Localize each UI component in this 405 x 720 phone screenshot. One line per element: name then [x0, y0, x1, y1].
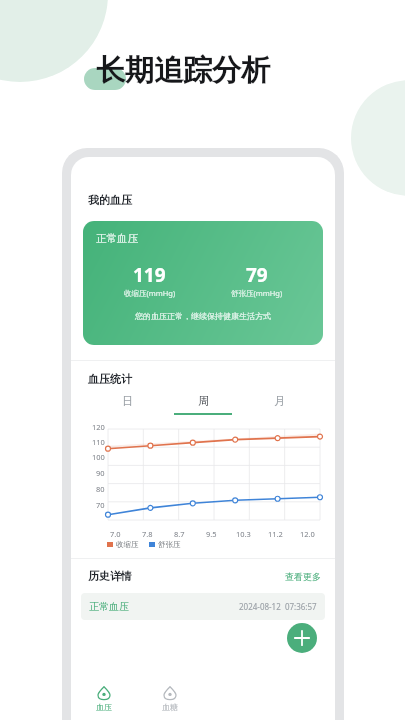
button[interactable]: 月: [241, 394, 317, 415]
staticText: 舒张压: [158, 540, 181, 549]
staticText: 我的血压: [88, 193, 132, 207]
staticText: 11.2: [268, 529, 283, 539]
button[interactable]: 血糖: [137, 678, 203, 720]
staticText: 120: [92, 422, 105, 432]
staticText: 9.5: [206, 529, 217, 539]
staticText: 2024-08-12 07:36:57: [239, 601, 317, 612]
staticText: 您的血压正常，继续保持健康生活方式: [96, 311, 310, 321]
staticText: 79: [246, 262, 268, 288]
staticText: 119: [133, 262, 166, 288]
button[interactable]: 查看更多: [285, 571, 321, 582]
staticText: 血压统计: [88, 372, 132, 386]
staticText: 70: [96, 500, 105, 510]
button[interactable]: 血压: [71, 678, 137, 720]
button[interactable]: 周: [165, 394, 241, 415]
staticText: 110: [92, 437, 105, 447]
staticText: 80: [96, 484, 105, 494]
staticText: 舒张压(mmHg): [231, 288, 283, 298]
staticText: 90: [96, 468, 105, 478]
staticText: 日: [122, 394, 133, 408]
staticText: 周: [198, 394, 209, 408]
staticText: 12.0: [300, 529, 315, 539]
staticText: 月: [274, 394, 285, 408]
staticText: 血压: [96, 702, 112, 712]
staticText: 正常血压: [96, 232, 138, 245]
staticText: 正常血压: [89, 600, 129, 613]
button[interactable]: 正常血压: [81, 593, 325, 620]
staticText: 历史详情: [88, 569, 132, 583]
staticText: 收缩压(mmHg): [124, 288, 176, 298]
staticText: 收缩压: [116, 540, 139, 549]
button[interactable]: 添加记录: [287, 623, 317, 653]
staticText: 7.0: [110, 529, 121, 539]
other: 血压: [97, 686, 111, 700]
button[interactable]: 正常血压: [83, 221, 323, 345]
staticText: 长期追踪分析: [96, 52, 270, 89]
staticText: 血糖: [162, 702, 178, 712]
button[interactable]: 日: [89, 394, 165, 415]
staticText: 10.3: [236, 529, 251, 539]
staticText: 8.7: [174, 529, 185, 539]
staticText: 100: [92, 452, 105, 462]
other: 血糖: [163, 686, 177, 700]
staticText: 7.8: [142, 529, 153, 539]
